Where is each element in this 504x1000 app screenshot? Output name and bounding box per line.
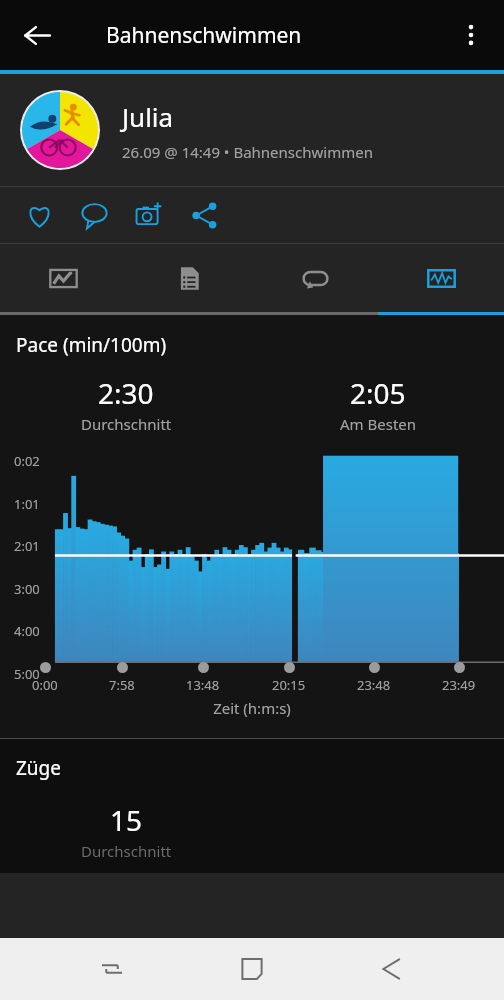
button[interactable]: Comment bbox=[67, 188, 122, 243]
staticText: 7:58 bbox=[109, 676, 135, 694]
staticText: Bahnenschwimmen bbox=[106, 21, 302, 50]
button[interactable]: Like bbox=[12, 188, 67, 243]
staticText: 23:48 bbox=[357, 676, 391, 694]
staticText: 26.09 @ 14:49 • Bahnenschwimmen bbox=[122, 142, 373, 162]
staticText: 5:00 bbox=[14, 665, 40, 683]
staticText: Julia bbox=[122, 99, 174, 134]
staticText: Züge bbox=[16, 755, 62, 781]
button[interactable]: Details bbox=[126, 244, 252, 312]
button[interactable]: Add photo bbox=[122, 188, 177, 243]
button[interactable]: Laps bbox=[252, 244, 378, 312]
staticText: 0:02 bbox=[14, 452, 40, 470]
staticText: Durchschnitt bbox=[81, 841, 172, 861]
staticText: Zeit (h:m:s) bbox=[0, 698, 504, 718]
button[interactable]: Home bbox=[224, 941, 280, 997]
button[interactable]: Julia bbox=[0, 74, 504, 186]
staticText: 2:01 bbox=[14, 537, 40, 555]
staticText: 15 bbox=[110, 801, 143, 839]
button[interactable]: Recents bbox=[84, 941, 140, 997]
button[interactable]: Map bbox=[0, 244, 126, 312]
staticText: Am Besten bbox=[340, 414, 417, 434]
button[interactable]: Charts bbox=[378, 244, 504, 312]
staticText: 23:49 bbox=[442, 676, 476, 694]
staticText: Pace (min/100m) bbox=[16, 332, 167, 358]
button[interactable]: Share bbox=[177, 188, 232, 243]
staticText: 3:00 bbox=[14, 580, 40, 598]
button[interactable]: Back bbox=[364, 941, 420, 997]
staticText: 20:15 bbox=[272, 676, 306, 694]
staticText: 13:48 bbox=[186, 676, 220, 694]
staticText: 4:00 bbox=[14, 622, 40, 640]
staticText: 1:01 bbox=[14, 495, 40, 513]
button[interactable]: Back bbox=[12, 10, 62, 60]
staticText: Durchschnitt bbox=[81, 414, 172, 434]
button[interactable]: More options bbox=[448, 12, 494, 58]
staticText: 0:00 bbox=[32, 676, 58, 694]
staticText: 2:05 bbox=[350, 374, 406, 412]
staticText: 2:30 bbox=[98, 374, 154, 412]
